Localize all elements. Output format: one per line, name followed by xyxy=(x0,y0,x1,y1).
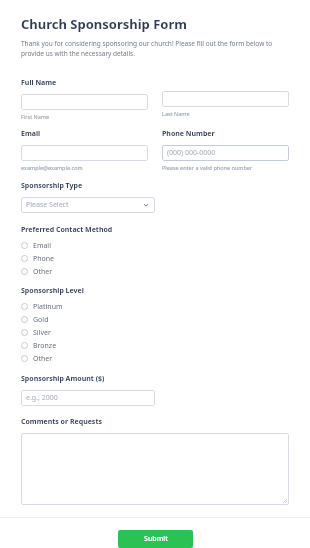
staticText: Please Select xyxy=(26,200,69,210)
staticText: Preferred Contact Method xyxy=(21,225,113,235)
staticText: First Name xyxy=(21,113,50,120)
button[interactable] xyxy=(162,91,289,107)
staticText: Gold xyxy=(33,315,49,325)
button[interactable]: Phone xyxy=(21,252,289,265)
button[interactable]: Silver xyxy=(21,326,289,339)
button[interactable]: Please Select xyxy=(21,197,155,213)
button[interactable]: Other xyxy=(21,352,289,365)
staticText: Silver xyxy=(33,328,51,338)
button[interactable]: Bronze xyxy=(21,339,289,352)
staticText: Comments or Requests xyxy=(21,417,102,427)
staticText: Sponsorship Level xyxy=(21,286,84,296)
button[interactable]: Submit xyxy=(118,530,193,548)
button[interactable]: Other xyxy=(21,265,289,278)
staticText: Email xyxy=(33,241,51,251)
staticText: Please enter a valid phone number xyxy=(162,164,253,171)
button[interactable]: e.g., 2000 xyxy=(21,390,155,406)
button[interactable] xyxy=(21,145,148,161)
staticText: (000) 000-0000 xyxy=(167,148,216,158)
staticText: example@example.com xyxy=(21,164,83,171)
staticText: Sponsorship Type xyxy=(21,181,83,191)
button[interactable]: Platinum xyxy=(21,300,289,313)
button[interactable] xyxy=(21,94,148,110)
staticText: e.g., 2000 xyxy=(26,393,58,403)
staticText: Phone Number xyxy=(162,129,215,139)
button[interactable]: Gold xyxy=(21,313,289,326)
staticText: Thank you for considering sponsoring our… xyxy=(21,39,289,58)
staticText: Last Name xyxy=(162,110,190,117)
staticText: Email xyxy=(21,129,41,139)
staticText: Platinum xyxy=(33,302,63,312)
staticText: Other xyxy=(33,267,53,277)
staticText: Bronze xyxy=(33,341,57,351)
button[interactable]: (000) 000-0000 xyxy=(162,145,289,161)
staticText: Church Sponsorship Form xyxy=(21,15,187,33)
button[interactable] xyxy=(21,433,289,505)
button[interactable]: Email xyxy=(21,239,289,252)
staticText: Phone xyxy=(33,254,55,264)
staticText: Sponsorship Amount ($) xyxy=(21,374,105,384)
staticText: Full Name xyxy=(21,78,57,88)
staticText: Other xyxy=(33,354,53,364)
staticText: Submit xyxy=(144,534,168,544)
